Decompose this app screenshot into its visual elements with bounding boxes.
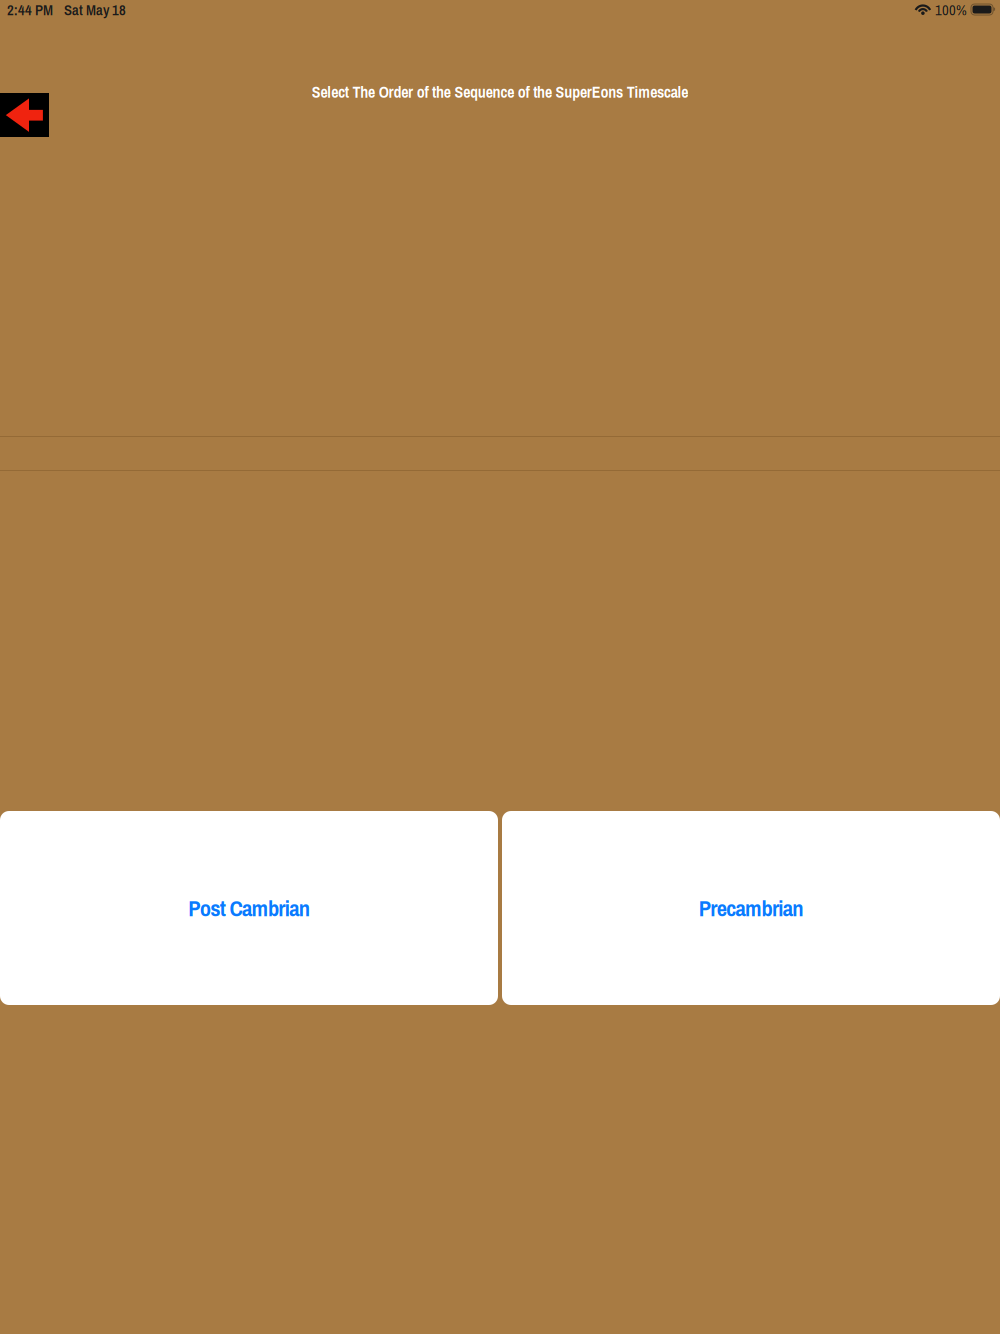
button[interactable]: Precambrian <box>502 811 1000 1005</box>
staticText: Select The Order of the Sequence of the … <box>312 81 688 103</box>
button[interactable]: Post Cambrian <box>0 811 498 1005</box>
staticText: 2:44 PM <box>7 0 53 20</box>
staticText: Sat May 18 <box>64 0 126 20</box>
staticText: 100% <box>935 0 967 20</box>
button[interactable]: Back <box>0 93 49 137</box>
staticText: Precambrian <box>699 893 803 923</box>
staticText: Post Cambrian <box>188 893 310 923</box>
